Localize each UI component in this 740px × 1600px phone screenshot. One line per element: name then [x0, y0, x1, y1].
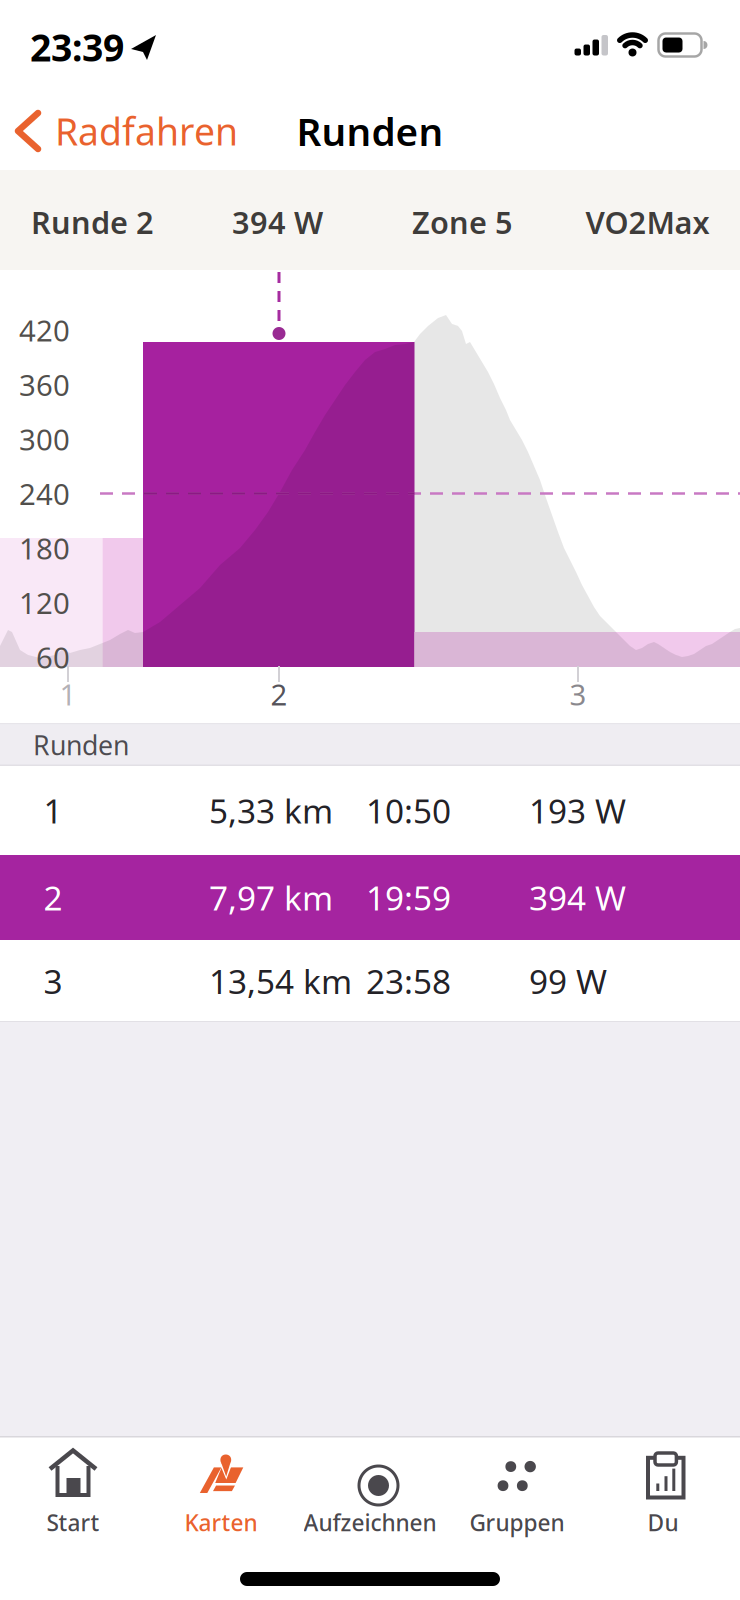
staticText: 2	[43, 875, 62, 920]
staticText: Du	[647, 1507, 678, 1537]
staticText: 240	[19, 474, 70, 513]
staticText: 1	[59, 674, 76, 713]
button[interactable]: Radfahren	[8, 100, 228, 162]
staticText: 19:59	[366, 875, 451, 920]
button[interactable]: Start	[0, 1440, 147, 1550]
staticText: Runden	[33, 727, 129, 763]
staticText: Radfahren	[55, 106, 238, 156]
staticText: 1	[43, 788, 62, 833]
staticText: 5,33 km	[209, 788, 333, 833]
staticText: Aufzeichnen	[303, 1507, 436, 1537]
staticText: Runde 2	[31, 202, 154, 242]
staticText: 394 W	[232, 202, 323, 242]
button[interactable]: Karten	[147, 1440, 295, 1550]
staticText: 3	[43, 959, 62, 1003]
staticText: 23:58	[366, 959, 451, 1003]
staticText: 7,97 km	[209, 875, 333, 920]
button[interactable]: Gruppen	[443, 1440, 591, 1550]
staticText: VO2Max	[585, 202, 709, 242]
staticText: 180	[19, 528, 70, 567]
staticText: 2	[270, 674, 287, 713]
staticText: 360	[19, 365, 70, 404]
staticText: 300	[19, 419, 70, 458]
staticText: 394 W	[529, 875, 626, 920]
staticText: Runden	[296, 105, 443, 157]
staticText: 99 W	[529, 959, 607, 1003]
staticText: 13,54 km	[209, 959, 352, 1003]
staticText: Zone 5	[412, 202, 513, 242]
staticText: Karten	[184, 1507, 257, 1537]
staticText: 420	[19, 310, 70, 349]
staticText: 10:50	[366, 788, 451, 833]
staticText: 23:39	[30, 22, 124, 72]
staticText: Gruppen	[469, 1507, 564, 1537]
button[interactable]: Aufzeichnen	[296, 1440, 444, 1550]
button[interactable]: 3	[0, 940, 740, 1022]
staticText: 193 W	[529, 788, 626, 833]
staticText: 60	[36, 637, 70, 676]
staticText: 3	[569, 674, 586, 713]
staticText: Start	[46, 1507, 99, 1537]
button[interactable]: 1	[0, 766, 740, 855]
button[interactable]: 2	[0, 855, 740, 940]
button[interactable]: Du	[589, 1440, 737, 1550]
staticText: 120	[19, 583, 70, 622]
